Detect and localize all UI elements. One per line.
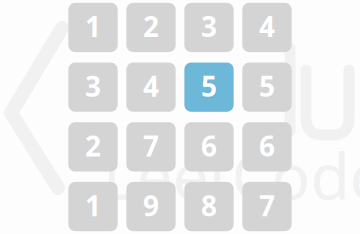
button[interactable]: 8: [184, 182, 234, 231]
staticText: 4: [259, 8, 275, 45]
button[interactable]: 9: [126, 182, 176, 231]
staticText: 7: [143, 127, 159, 164]
button[interactable]: 7: [126, 122, 176, 171]
staticText: 1: [85, 187, 101, 224]
button[interactable]: 5: [242, 62, 292, 112]
staticText: 6: [201, 127, 217, 164]
button[interactable]: 4: [126, 62, 176, 112]
button[interactable]: 1: [68, 3, 118, 52]
button[interactable]: 3: [68, 62, 118, 112]
staticText: 3: [85, 67, 101, 105]
button[interactable]: 4: [242, 3, 292, 52]
staticText: 5: [201, 67, 217, 105]
button[interactable]: 1: [68, 182, 118, 231]
button[interactable]: 6: [184, 122, 234, 171]
button[interactable]: 3: [184, 3, 234, 52]
staticText: 2: [143, 8, 159, 45]
staticText: 6: [259, 127, 275, 164]
staticText: 3: [201, 8, 217, 45]
staticText: 1: [85, 8, 101, 45]
staticText: 7: [259, 187, 275, 224]
staticText: 8: [201, 187, 217, 224]
button[interactable]: 5: [184, 62, 234, 112]
button[interactable]: 2: [126, 3, 176, 52]
button[interactable]: 7: [242, 182, 292, 231]
staticText: 4: [143, 67, 159, 105]
button[interactable]: 6: [242, 122, 292, 171]
staticText: LeetCode: [102, 132, 360, 217]
staticText: 2: [85, 127, 101, 164]
staticText: 9: [143, 187, 159, 224]
button[interactable]: 2: [68, 122, 118, 171]
staticText: 5: [259, 67, 275, 105]
